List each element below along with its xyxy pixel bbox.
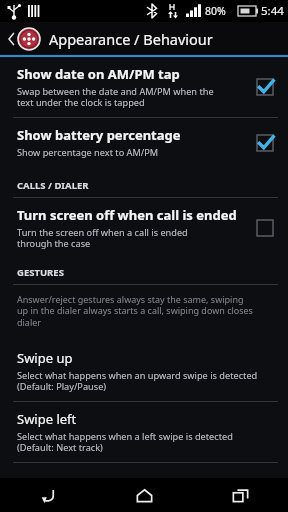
button[interactable]: Recent apps <box>192 478 288 512</box>
staticText: Show percentage next to AM/PM <box>17 146 159 159</box>
button[interactable]: Checked <box>252 130 278 156</box>
button[interactable]: Swipe left <box>0 402 288 462</box>
staticText: Show battery percentage <box>17 126 181 144</box>
staticText: Turn the screen off when a call is ended… <box>17 226 188 250</box>
staticText: GESTURES <box>17 266 64 279</box>
staticText: 80% <box>205 4 226 18</box>
button[interactable]: Turn screen off when call is ended <box>0 198 288 258</box>
button[interactable]: Swipe up <box>0 341 288 401</box>
staticText: Show date on AM/PM tap <box>17 65 180 83</box>
button[interactable]: Home <box>96 478 192 512</box>
other: Navigate up <box>6 29 16 49</box>
button[interactable]: Checked <box>252 74 278 100</box>
staticText: Answer/reject gestures always stay the s… <box>17 293 253 329</box>
staticText: Swipe left <box>17 410 77 428</box>
staticText: 5:44 <box>261 3 284 19</box>
staticText: Appearance / Behaviour <box>49 29 213 49</box>
button[interactable]: Show battery percentage <box>0 118 288 167</box>
staticText: Swipe up <box>17 349 73 367</box>
button[interactable]: Show date on AM/PM tap <box>0 57 288 117</box>
staticText: Select what happens when an upward swipe… <box>17 369 258 393</box>
staticText: Swap between the date and AM/PM when the… <box>17 85 214 109</box>
button[interactable]: Back <box>0 478 96 512</box>
staticText: CALLS / DIALER <box>17 179 89 192</box>
staticText: Turn screen off when call is ended <box>17 206 237 224</box>
button[interactable]: Unchecked <box>252 215 278 241</box>
button[interactable]: Navigate up <box>0 22 288 55</box>
staticText: Select what happens when a left swipe is… <box>17 430 233 454</box>
